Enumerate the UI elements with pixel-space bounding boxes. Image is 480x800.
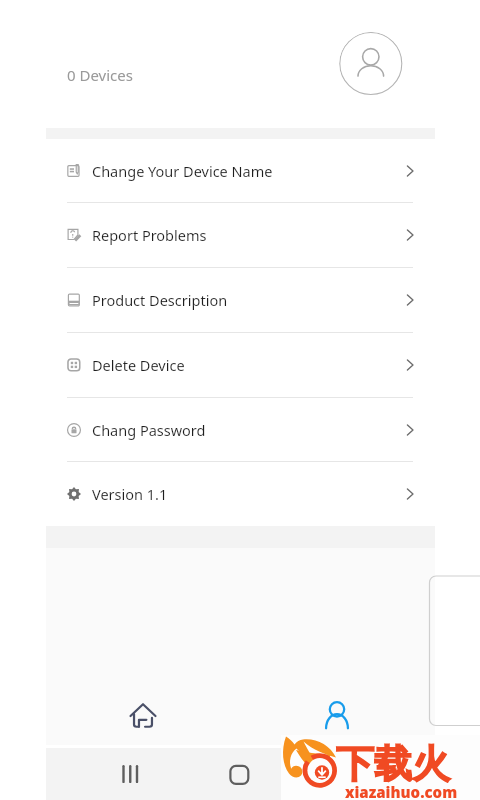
button[interactable]: Profile: [339, 32, 403, 96]
staticText: Chang Password: [92, 420, 206, 440]
button[interactable]: Product Description: [0, 267, 480, 332]
button[interactable]: Home: [46, 688, 241, 745]
button[interactable]: Report Problems: [0, 202, 480, 267]
staticText: Product Description: [92, 290, 228, 310]
staticText: Delete Device: [92, 355, 185, 375]
staticText: 0 Devices: [67, 65, 133, 85]
button[interactable]: Profile: [241, 688, 435, 745]
staticText: xiazaihuo.com: [345, 782, 458, 800]
button[interactable]: Version 1.1: [0, 461, 480, 526]
staticText: Report Problems: [92, 225, 207, 245]
staticText: Change Your Device Name: [92, 161, 273, 181]
staticText: 下载火: [336, 740, 450, 788]
button[interactable]: Delete Device: [0, 332, 480, 397]
button[interactable]: Change Your Device Name: [0, 138, 480, 203]
button[interactable]: Chang Password: [0, 397, 480, 462]
staticText: Version 1.1: [92, 484, 168, 504]
